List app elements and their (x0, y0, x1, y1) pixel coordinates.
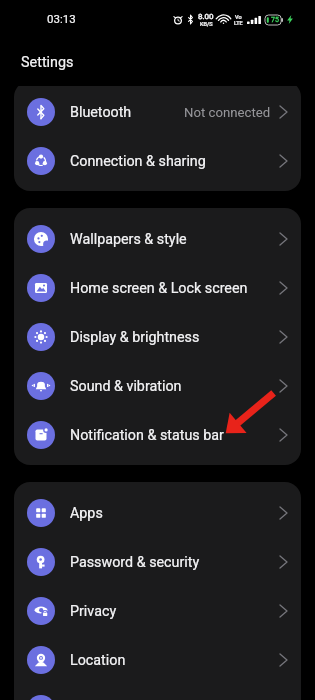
button[interactable]: Password & security (14, 537, 301, 586)
button[interactable]: Bluetooth (14, 87, 301, 136)
staticText: Home screen & Lock screen (70, 280, 248, 297)
staticText: Vo (235, 14, 242, 20)
button[interactable]: Display & brightness (14, 312, 301, 361)
staticText: Location (70, 652, 126, 669)
button[interactable]: Wallpapers & style (14, 214, 301, 263)
staticText: Password & security (70, 554, 200, 571)
staticText: Not connected (184, 105, 271, 120)
staticText: Settings (21, 54, 74, 71)
staticText: 8.00 (198, 12, 214, 21)
staticText: Bluetooth (70, 104, 132, 121)
staticText: Apps (70, 505, 103, 522)
staticText: KB/S (200, 21, 213, 27)
staticText: LTE (234, 20, 243, 26)
button[interactable]: Connection & sharing (14, 136, 301, 185)
staticText: 75 (271, 16, 279, 24)
staticText: Wallpapers & style (70, 231, 187, 248)
staticText: 03:13 (47, 12, 76, 25)
button[interactable]: Notification & status bar (14, 410, 301, 459)
button[interactable]: Sound & vibration (14, 361, 301, 410)
staticText: Display & brightness (70, 329, 200, 346)
staticText: Connection & sharing (70, 153, 206, 170)
button[interactable]: Home screen & Lock screen (14, 263, 301, 312)
button[interactable]: Apps (14, 488, 301, 537)
staticText: Sound & vibration (70, 378, 182, 395)
staticText: Notification & status bar (70, 427, 224, 444)
button[interactable]: Accounts (14, 684, 301, 700)
button[interactable]: Privacy (14, 586, 301, 635)
staticText: Privacy (70, 603, 117, 620)
button[interactable]: Location (14, 635, 301, 684)
